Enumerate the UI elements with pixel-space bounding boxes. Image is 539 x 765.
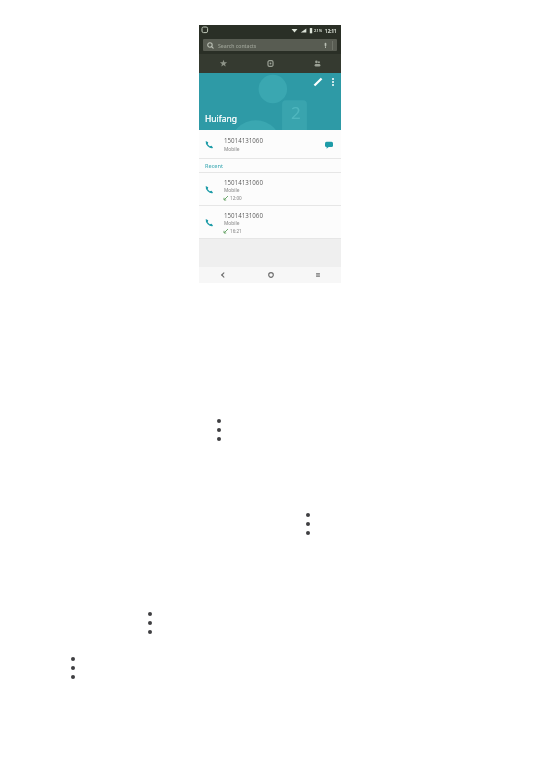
- staticText: 21%: [314, 28, 323, 34]
- staticText: 15014131060: [224, 178, 263, 186]
- staticText: 16:21: [230, 228, 242, 234]
- staticText: 12:11: [325, 28, 337, 34]
- button[interactable]: Favorites: [199, 54, 247, 73]
- staticText: 15014131060: [224, 211, 263, 219]
- button[interactable]: Recent apps: [294, 267, 341, 283]
- button[interactable]: Contacts: [294, 54, 341, 73]
- other: Voice search: [322, 42, 329, 49]
- staticText: Huifang: [205, 113, 237, 125]
- staticText: Mobile: [224, 187, 240, 194]
- staticText: 2: [291, 101, 301, 124]
- staticText: Recent: [205, 162, 223, 170]
- staticText: Search contacts: [218, 42, 257, 49]
- button[interactable]: More options: [327, 76, 338, 87]
- staticText: 12:00: [230, 195, 242, 201]
- button[interactable]: 15014131060: [199, 206, 341, 238]
- button[interactable]: Edit contact: [312, 76, 323, 87]
- button[interactable]: Recents: [247, 54, 294, 73]
- button[interactable]: Search contacts: [203, 39, 337, 51]
- button[interactable]: Back: [199, 267, 247, 283]
- button[interactable]: Send message: [322, 138, 335, 151]
- button[interactable]: Home: [247, 267, 294, 283]
- button[interactable]: 15014131060: [199, 173, 341, 205]
- button[interactable]: 15014131060: [199, 130, 341, 159]
- staticText: Mobile: [224, 146, 240, 153]
- staticText: Mobile: [224, 220, 240, 227]
- staticText: 15014131060: [224, 136, 263, 144]
